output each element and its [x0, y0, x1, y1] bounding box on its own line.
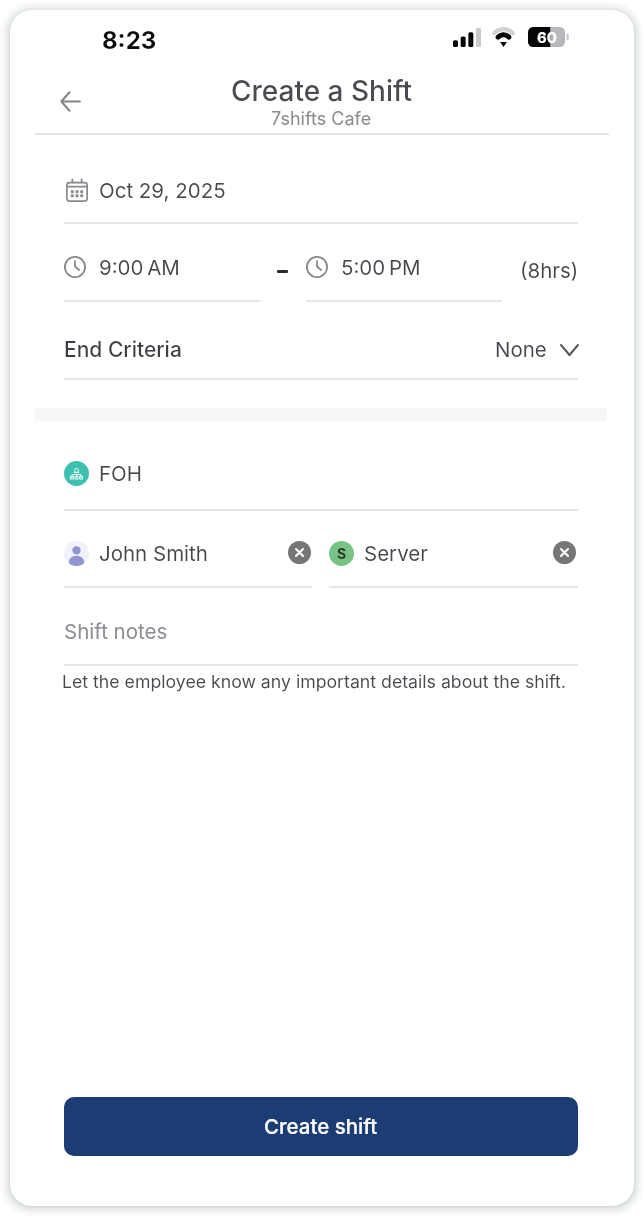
staticText: John Smith	[99, 541, 208, 566]
staticText: 5:00 PM	[341, 255, 421, 280]
button[interactable]: Shift notes	[64, 608, 578, 654]
staticText: Shift notes	[64, 619, 168, 644]
staticText: None	[495, 337, 547, 362]
button[interactable]: Back	[48, 79, 92, 123]
staticText: Let the employee know any important deta…	[62, 671, 566, 692]
button[interactable]: Remove	[288, 541, 311, 564]
button[interactable]: FOH	[64, 452, 578, 494]
button[interactable]: 5:00 PM	[306, 246, 502, 288]
button[interactable]: John Smith	[64, 532, 312, 574]
staticText: 8:23	[102, 26, 157, 55]
staticText: Create a Shift	[231, 74, 413, 108]
button[interactable]: End Criteria	[64, 325, 578, 373]
button[interactable]: S	[329, 532, 544, 574]
staticText: (8hrs)	[520, 258, 579, 283]
staticText: End Criteria	[64, 337, 182, 362]
staticText: S	[337, 545, 347, 562]
staticText: 60	[537, 28, 557, 46]
staticText: Create shift	[264, 1114, 378, 1139]
staticText: 9:00 AM	[99, 255, 180, 280]
button[interactable]: Remove	[553, 541, 576, 564]
button[interactable]: 9:00 AM	[64, 246, 260, 288]
button[interactable]: Create shift	[64, 1097, 578, 1156]
staticText: Server	[364, 541, 428, 566]
staticText: 7shifts Cafe	[271, 108, 372, 130]
staticText: FOH	[99, 461, 143, 486]
staticText: Oct 29, 2025	[99, 178, 226, 203]
button[interactable]: Oct 29, 2025	[64, 164, 578, 216]
